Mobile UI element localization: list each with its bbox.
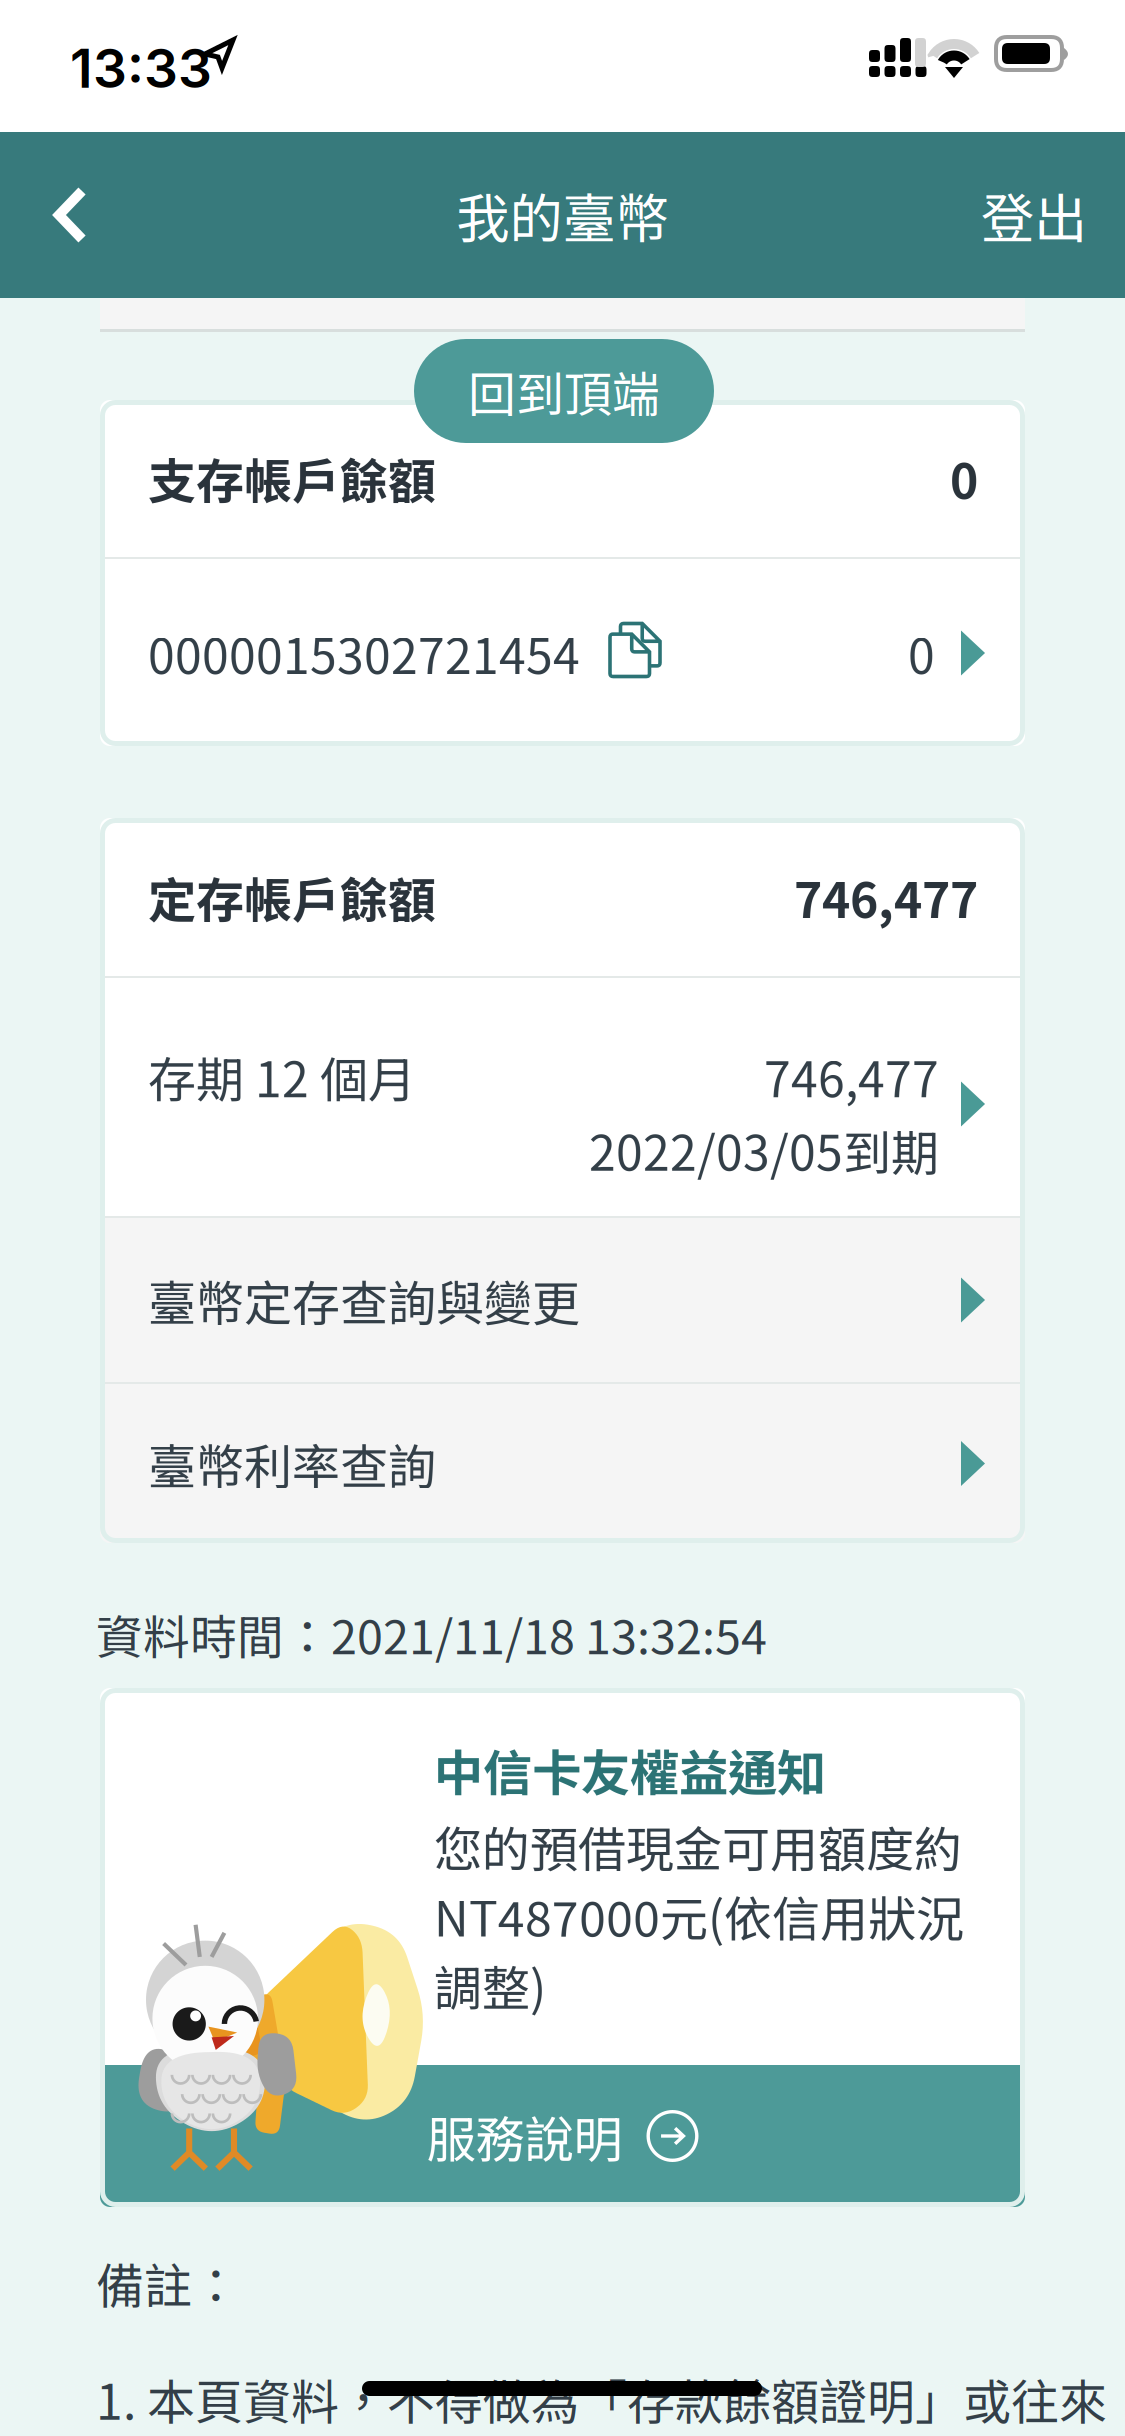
button[interactable]: 登出	[981, 122, 1125, 308]
staticText: 1. 本頁資料，不得做為「存款餘額證明」或往來	[96, 2364, 1107, 2433]
staticText: 定存帳戶餘額	[148, 862, 436, 932]
staticText: 臺幣定存查詢與變更	[148, 1265, 580, 1335]
staticText: 備註：	[96, 2248, 240, 2317]
button[interactable]: 服務說明	[100, 2065, 1025, 2207]
staticText: 0000015302721454	[148, 618, 580, 688]
staticText: 資料時間：2021/11/18 13:32:54	[96, 1600, 767, 1668]
staticText: 中信卡友權益通知	[434, 1734, 826, 1805]
staticText: 服務說明	[426, 2100, 622, 2172]
staticText: 存期 12 個月	[148, 1041, 416, 1111]
staticText: 0	[950, 443, 978, 513]
staticText: 2022/03/05到期	[589, 1115, 939, 1184]
button[interactable]: 臺幣利率查詢	[100, 1384, 1025, 1543]
button[interactable]: 臺幣定存查詢與變更	[100, 1218, 1025, 1382]
button[interactable]: 回到頂端	[414, 339, 714, 443]
staticText: 13:33	[70, 36, 212, 100]
staticText: 746,477	[764, 1041, 939, 1111]
staticText: 臺幣利率查詢	[148, 1429, 436, 1498]
staticText: 回到頂端	[468, 356, 660, 426]
staticText: 我的臺幣	[456, 176, 668, 254]
staticText: 登出	[981, 176, 1087, 254]
staticText: 您的預借現金可用額度約NT487000元(依信用狀況調整)	[434, 1811, 964, 2020]
staticText: 支存帳戶餘額	[148, 443, 436, 513]
button[interactable]: 存期 12 個月	[100, 978, 1025, 1216]
staticText: 0	[908, 618, 935, 688]
button[interactable]: 0000015302721454	[100, 559, 1025, 747]
staticText: 746,477	[794, 862, 978, 932]
button[interactable]: Back	[0, 132, 130, 298]
